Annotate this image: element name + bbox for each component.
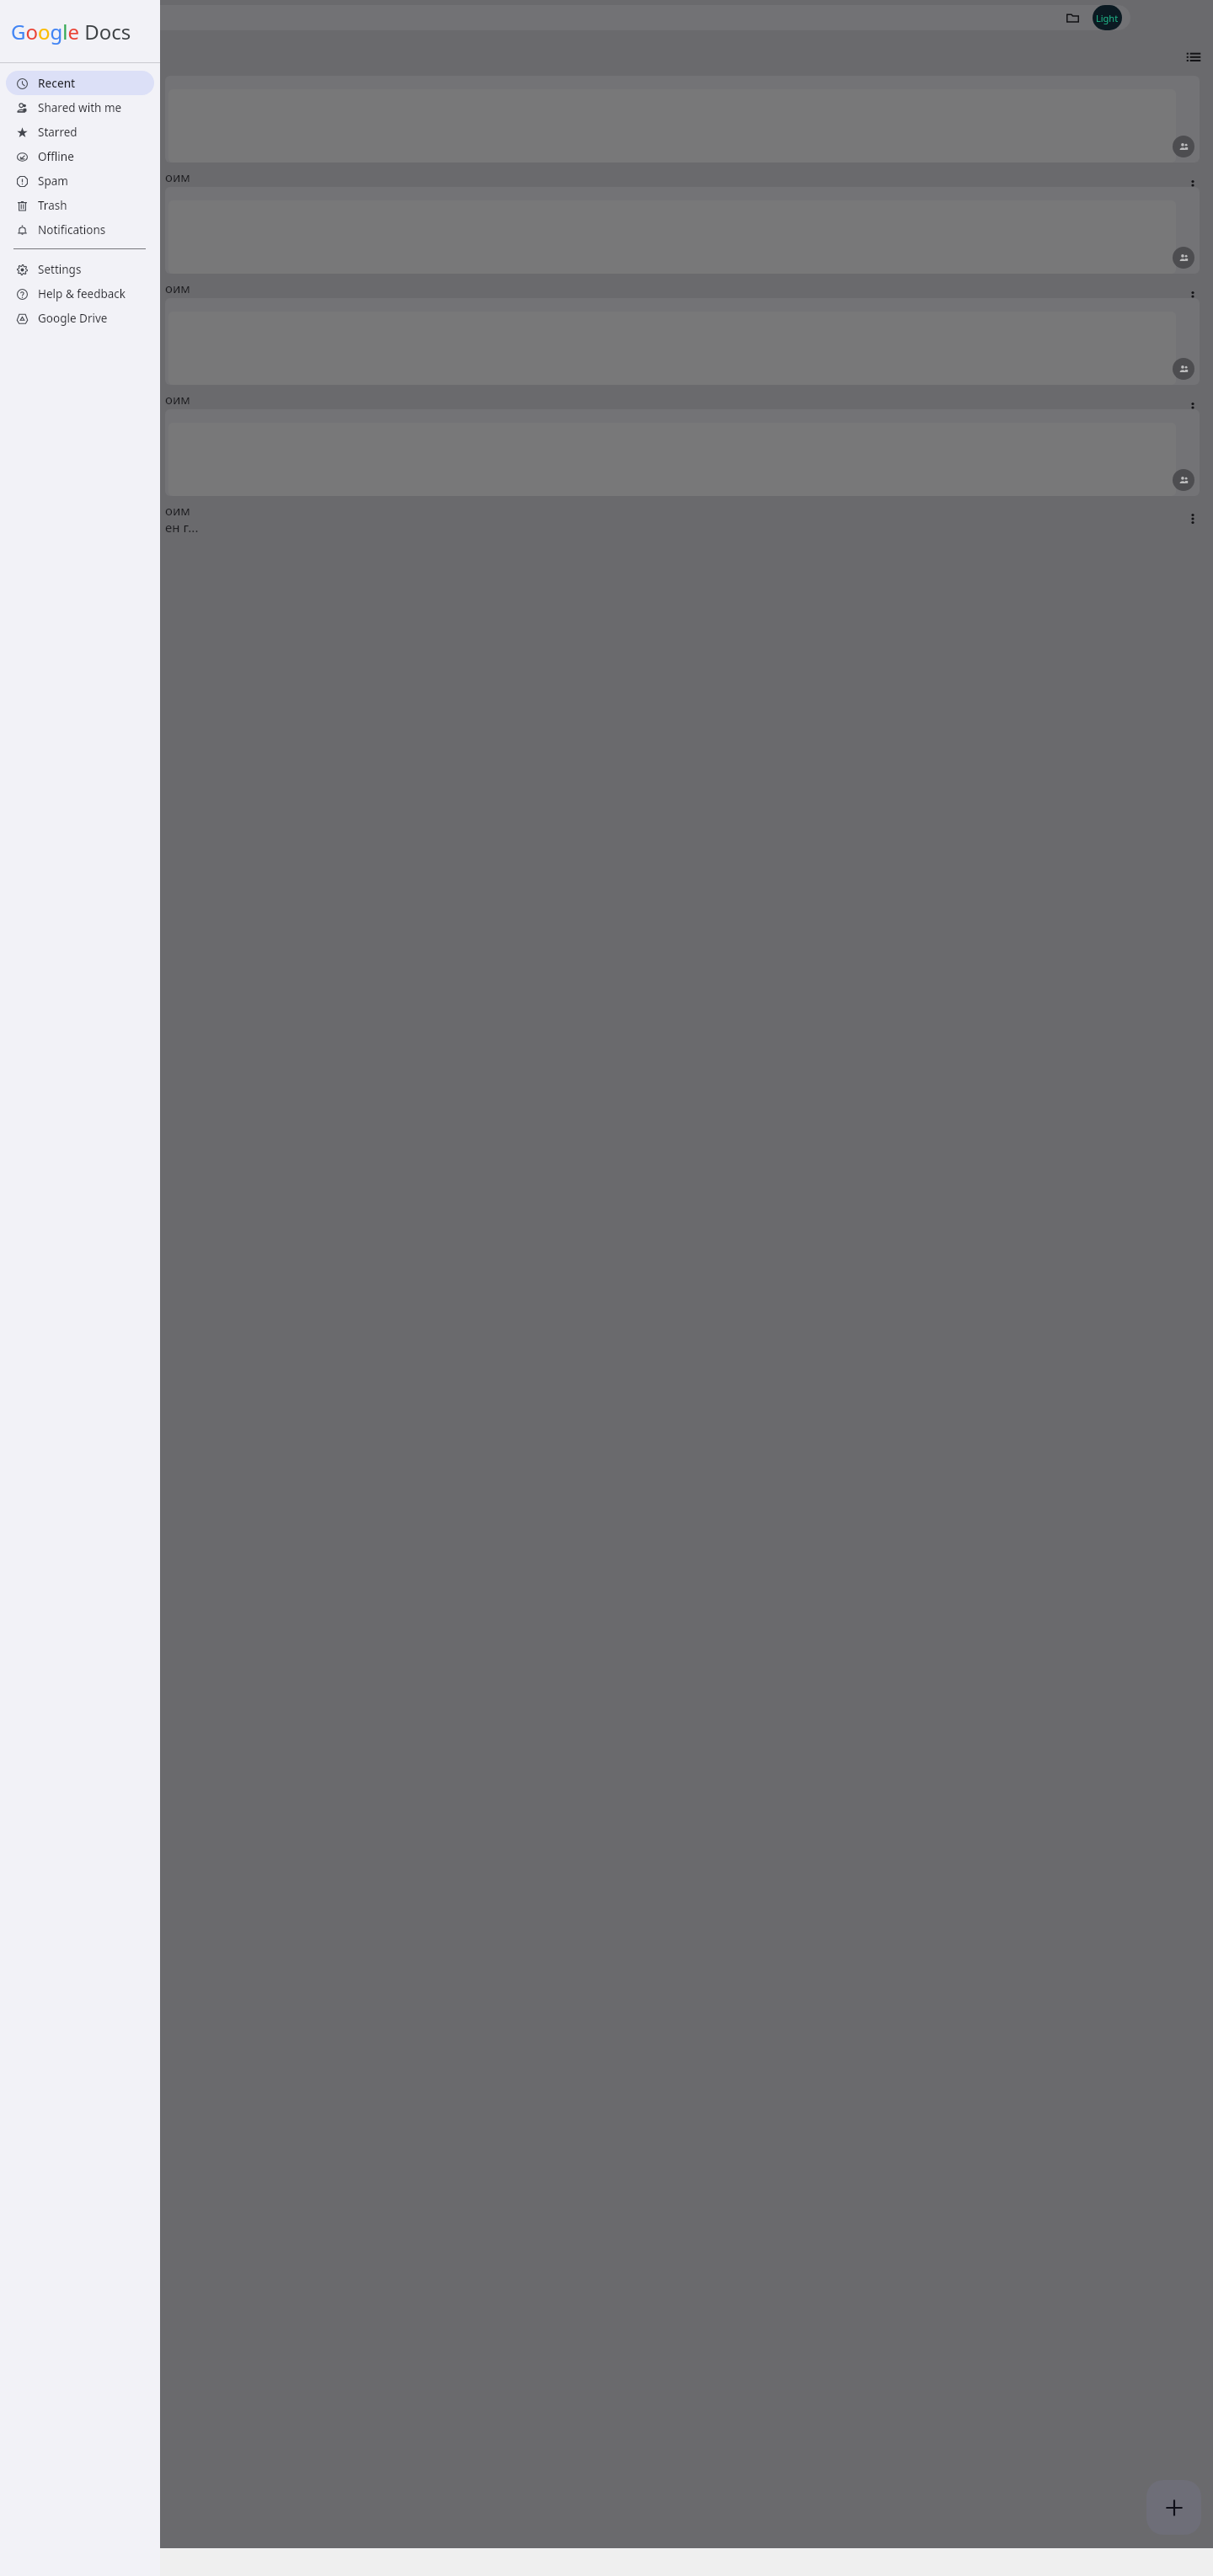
staticText: Notifications bbox=[38, 222, 106, 237]
button[interactable]: Settings bbox=[6, 257, 154, 281]
button[interactable]: List view bbox=[1186, 49, 1201, 64]
other: Folders bbox=[1066, 12, 1079, 24]
button[interactable] bbox=[165, 76, 1200, 163]
staticText: ен г... bbox=[165, 408, 199, 424]
staticText: оим bbox=[165, 280, 190, 296]
staticText: Spam bbox=[38, 173, 68, 189]
staticText: оим bbox=[165, 391, 190, 408]
button[interactable]: More options bbox=[1186, 290, 1200, 303]
staticText: Trash bbox=[38, 198, 67, 213]
staticText: ен г... bbox=[165, 185, 199, 202]
staticText: Starred bbox=[38, 125, 77, 140]
staticText: Help & feedback bbox=[38, 286, 126, 301]
button[interactable]: Offline bbox=[6, 144, 154, 168]
button[interactable] bbox=[165, 409, 1200, 496]
staticText: оим bbox=[165, 168, 190, 185]
staticText: ен г... bbox=[165, 519, 199, 536]
button[interactable]: More options bbox=[1186, 512, 1200, 525]
staticText: Light bbox=[1096, 12, 1119, 24]
staticText: оим bbox=[165, 502, 190, 519]
button[interactable]: More options bbox=[1186, 179, 1200, 192]
button[interactable]: Trash bbox=[6, 193, 154, 217]
button[interactable]: Starred bbox=[6, 120, 154, 144]
other: Account bbox=[1093, 5, 1122, 30]
button[interactable] bbox=[165, 298, 1200, 385]
staticText: Shared with me bbox=[38, 100, 122, 115]
button[interactable]: More options bbox=[1186, 401, 1200, 414]
button[interactable]: Folders bbox=[34, 5, 1130, 30]
staticText: Google Drive bbox=[38, 311, 108, 326]
staticText: Recent bbox=[38, 76, 76, 91]
button[interactable]: Recent bbox=[6, 71, 154, 95]
button[interactable]: Google Drive bbox=[6, 306, 154, 330]
button[interactable]: Help & feedback bbox=[6, 281, 154, 306]
staticText: ен г... bbox=[165, 296, 199, 313]
staticText: Offline bbox=[38, 149, 74, 164]
staticText: Google Docs bbox=[11, 18, 131, 45]
staticText: Settings bbox=[38, 262, 82, 277]
button[interactable]: Shared with me bbox=[6, 95, 154, 120]
button[interactable]: New document bbox=[1146, 2480, 1201, 2535]
button[interactable]: Spam bbox=[6, 168, 154, 193]
button[interactable]: Notifications bbox=[6, 217, 154, 242]
button[interactable] bbox=[165, 187, 1200, 274]
